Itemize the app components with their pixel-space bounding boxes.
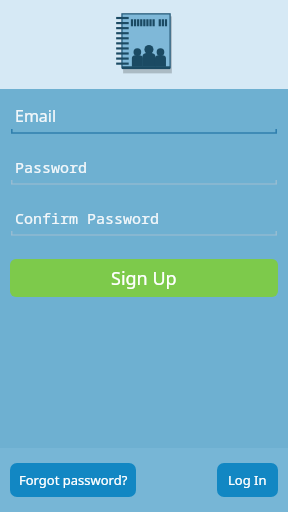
staticText: Email (15, 105, 57, 127)
staticText: Confirm Password (15, 208, 160, 228)
staticText: Sign Up (111, 266, 177, 291)
button[interactable]: Sign Up (10, 259, 278, 297)
staticText: Password (15, 157, 88, 177)
staticText: Log In (228, 471, 267, 489)
button[interactable]: Email (11, 103, 277, 136)
button[interactable]: Forgot password? (10, 463, 136, 497)
button[interactable]: Password (11, 154, 277, 187)
button[interactable]: Confirm Password (11, 205, 277, 238)
staticText: Forgot password? (19, 471, 128, 489)
button[interactable]: Log In (217, 463, 278, 497)
